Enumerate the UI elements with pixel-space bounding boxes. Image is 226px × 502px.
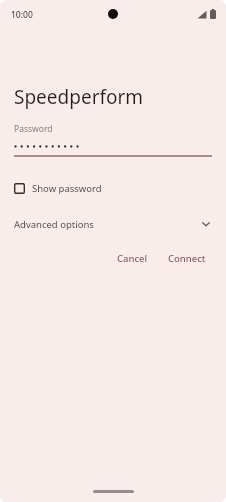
other: Expand advanced options	[200, 218, 212, 230]
staticText: Advanced options	[14, 218, 94, 231]
button[interactable]: Cancel	[111, 247, 154, 270]
staticText: Password	[14, 123, 53, 135]
button[interactable]: Show password	[14, 180, 102, 197]
button[interactable]: Advanced options	[14, 215, 212, 233]
staticText: Speedperform	[14, 84, 144, 110]
staticText: Show password	[32, 182, 102, 195]
staticText: Cancel	[117, 252, 148, 265]
button[interactable]	[14, 142, 212, 158]
button[interactable]: Connect	[162, 247, 212, 270]
staticText: Connect	[168, 252, 206, 265]
staticText: 10:00	[11, 9, 33, 21]
